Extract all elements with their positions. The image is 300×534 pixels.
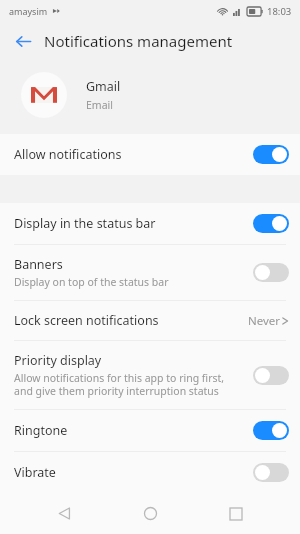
staticText: Priority display (14, 352, 102, 369)
button[interactable]: Recent apps (214, 493, 258, 534)
button[interactable]: Priority display (0, 341, 300, 409)
staticText: Ringtone (14, 422, 68, 439)
button[interactable]: Off (253, 463, 289, 482)
staticText: Display on top of the status bar (14, 275, 169, 289)
button[interactable]: Display in the status bar (0, 203, 300, 244)
staticText: Email (86, 98, 113, 112)
staticText: amaysim (9, 5, 48, 17)
button[interactable]: Ringtone (0, 410, 300, 451)
button[interactable]: Back (8, 26, 38, 56)
staticText: Gmail (86, 78, 121, 95)
button[interactable]: Banners (0, 245, 300, 300)
button[interactable]: On (253, 214, 289, 233)
staticText: Banners (14, 256, 63, 273)
button[interactable]: Allow notifications (0, 134, 300, 175)
button[interactable]: On (253, 145, 289, 164)
staticText: Allow notifications (14, 146, 122, 163)
button[interactable]: Back (42, 493, 86, 534)
staticText: Lock screen notifications (14, 312, 159, 329)
staticText: Vibrate (14, 464, 56, 481)
button[interactable]: Off (253, 263, 289, 282)
staticText: Display in the status bar (14, 215, 156, 232)
button[interactable]: Lock screen notifications (0, 301, 300, 340)
staticText: Notifications management (44, 31, 233, 51)
button[interactable]: Off (253, 366, 289, 385)
button[interactable]: Vibrate (0, 452, 300, 493)
staticText: Never (248, 313, 281, 329)
staticText: Allow notifications for this app to ring… (14, 371, 245, 398)
button[interactable]: On (253, 421, 289, 440)
button[interactable]: Gmail (0, 64, 300, 126)
button[interactable]: Home (128, 493, 172, 534)
staticText: 18:03 (267, 5, 292, 18)
